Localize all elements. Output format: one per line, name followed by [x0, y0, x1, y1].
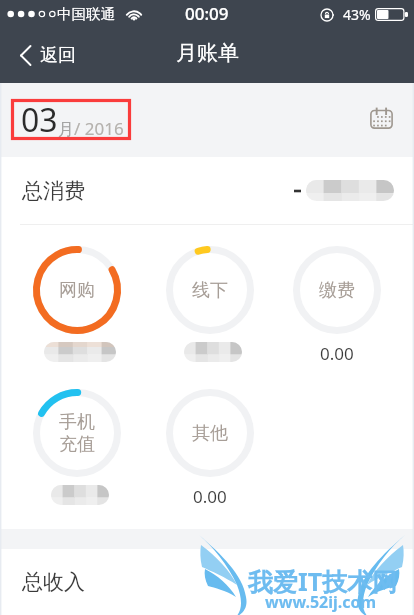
- staticText: 00:09: [185, 2, 229, 25]
- staticText: 月: [58, 120, 74, 140]
- button[interactable]: 返回: [0, 28, 90, 83]
- staticText: 总收入: [22, 569, 85, 595]
- staticText: 03: [21, 98, 58, 142]
- staticText: 线下: [192, 279, 228, 302]
- staticText: 中国联通: [57, 5, 115, 23]
- staticText: www.52ij.com: [265, 591, 377, 613]
- staticText: 其他: [192, 422, 228, 445]
- button[interactable]: 其他: [166, 389, 254, 477]
- button[interactable]: 缴费: [293, 246, 381, 334]
- staticText: 总消费: [22, 178, 85, 204]
- staticText: 缴费: [319, 279, 355, 302]
- staticText: 手机 充值: [59, 411, 95, 456]
- staticText: 0.00: [320, 342, 354, 365]
- staticText: 0.00: [193, 485, 227, 508]
- button[interactable]: 网购: [33, 246, 121, 334]
- staticText: 43%: [343, 5, 371, 24]
- staticText: 网购: [59, 279, 95, 302]
- button[interactable]: Choose month: [370, 107, 393, 129]
- staticText: 返回: [40, 44, 76, 67]
- staticText: 月账单: [176, 40, 239, 66]
- staticText: / 2016: [74, 117, 124, 140]
- button[interactable]: 手机 充值: [33, 389, 121, 477]
- button[interactable]: 03: [21, 98, 124, 142]
- staticText: 我爱IT技术网: [248, 564, 398, 598]
- button[interactable]: 线下: [166, 246, 254, 334]
